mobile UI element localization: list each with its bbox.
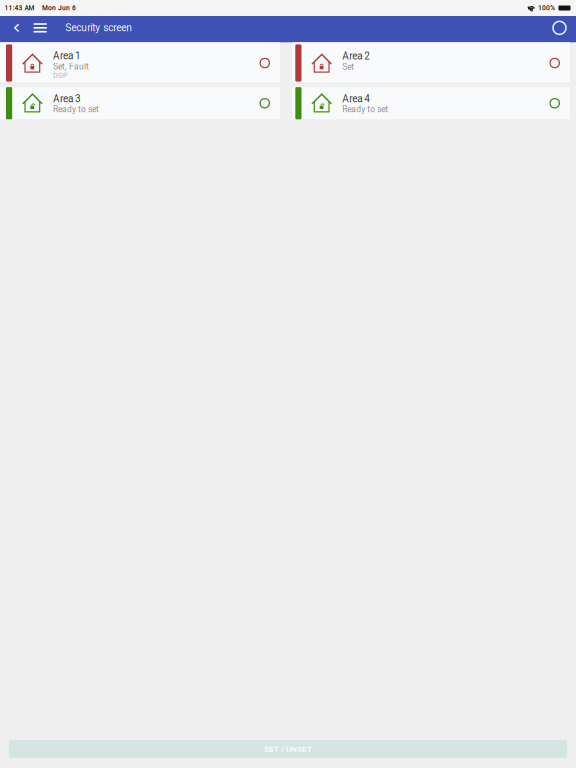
staticText: Ready to set xyxy=(342,105,388,114)
staticText: Mon Jun 6 xyxy=(42,4,76,12)
staticText: Ready to set xyxy=(53,105,99,114)
button[interactable]: SET / UNSET xyxy=(9,740,567,758)
button[interactable]: Area 2 xyxy=(292,42,570,82)
staticText: 100% xyxy=(538,4,555,12)
button[interactable]: Connection status xyxy=(553,16,576,42)
staticText: Area 1 xyxy=(53,50,81,62)
button[interactable]: Area 1 xyxy=(0,42,280,82)
staticText: Set xyxy=(342,62,354,72)
button[interactable]: Back xyxy=(0,16,34,42)
staticText: Area 2 xyxy=(342,50,370,62)
button[interactable]: Menu xyxy=(34,16,52,42)
staticText: 11:43 AM xyxy=(4,4,34,12)
staticText: Area 3 xyxy=(53,93,81,104)
staticText: SET / UNSET xyxy=(264,744,312,754)
staticText: Area 4 xyxy=(342,93,370,104)
staticText: Set, Fault xyxy=(53,62,89,71)
button[interactable]: Area 4 xyxy=(292,87,570,119)
staticText: Security screen xyxy=(65,22,132,34)
staticText: DGP xyxy=(53,71,68,80)
button[interactable]: Area 3 xyxy=(0,87,280,119)
